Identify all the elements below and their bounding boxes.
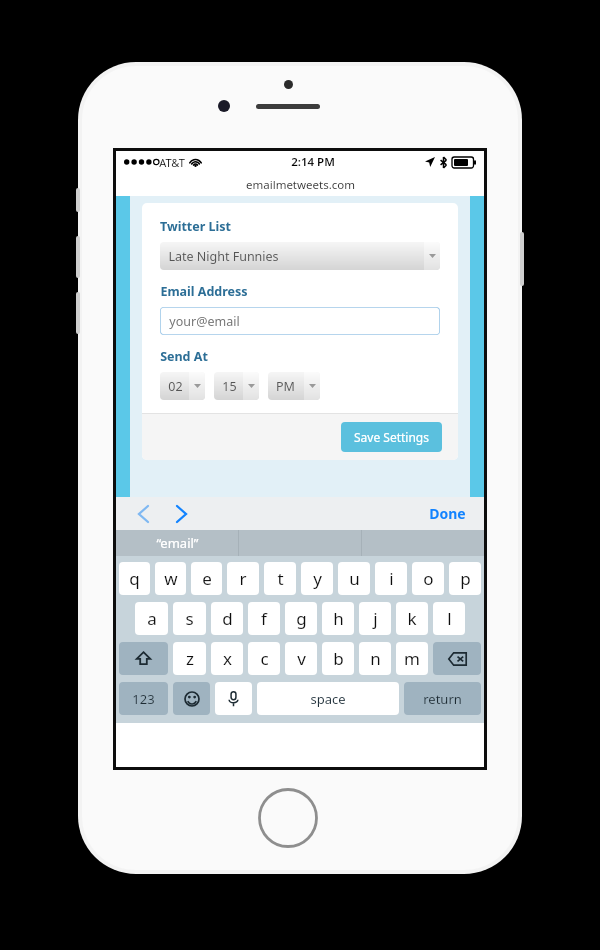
staticText: m (404, 647, 420, 670)
staticText: w (164, 567, 178, 590)
button[interactable]: o (412, 562, 444, 595)
button[interactable]: z (173, 642, 206, 675)
staticText: s (185, 607, 194, 630)
button[interactable]: r (227, 562, 259, 595)
staticText: q (129, 567, 140, 590)
staticText: 02 (168, 378, 183, 395)
button[interactable]: u (338, 562, 370, 595)
staticText: Done (429, 504, 466, 523)
button[interactable]: y (301, 562, 333, 595)
staticText: f (261, 607, 267, 630)
button[interactable]: n (359, 642, 391, 675)
staticText: i (389, 567, 394, 590)
button[interactable]: w (155, 562, 186, 595)
staticText: p (460, 567, 471, 590)
button[interactable]: Dictation (215, 682, 252, 715)
button[interactable]: Emoji (173, 682, 210, 715)
button[interactable]: f (248, 602, 280, 635)
staticText: Send At (160, 348, 208, 365)
staticText: “email” (156, 534, 199, 552)
button[interactable]: h (322, 602, 354, 635)
staticText: y (313, 567, 322, 590)
button[interactable]: i (375, 562, 407, 595)
staticText: Email Address (160, 283, 248, 300)
button[interactable]: “email” (116, 530, 238, 556)
button[interactable]: Save Settings (341, 422, 442, 452)
staticText: a (147, 607, 157, 630)
staticText: 15 (222, 378, 237, 395)
button[interactable]: s (173, 602, 206, 635)
button[interactable]: k (396, 602, 428, 635)
staticText: Twitter List (160, 218, 231, 235)
staticText: v (297, 647, 306, 670)
staticText: u (349, 567, 360, 590)
staticText: z (186, 647, 194, 670)
staticText: PM (276, 378, 295, 395)
staticText: d (222, 607, 233, 630)
button[interactable]: j (359, 602, 391, 635)
staticText: your@email (169, 313, 240, 330)
staticText: emailmetweets.com (246, 177, 355, 193)
button[interactable]: return (404, 682, 481, 715)
staticText: j (373, 607, 378, 630)
button[interactable]: 123 (119, 682, 168, 715)
staticText: Save Settings (354, 429, 429, 445)
button[interactable]: m (396, 642, 428, 675)
button[interactable]: v (285, 642, 317, 675)
staticText: Late Night Funnies (168, 248, 279, 265)
button[interactable]: Done (425, 499, 470, 528)
staticText: AT&T (159, 155, 185, 170)
staticText: return (423, 690, 462, 708)
button[interactable]: d (211, 602, 243, 635)
staticText: 2:14 PM (291, 154, 335, 170)
staticText: l (447, 607, 452, 630)
button[interactable]: x (211, 642, 243, 675)
staticText: space (310, 690, 346, 708)
staticText: 123 (132, 690, 155, 708)
staticText: n (370, 647, 381, 670)
button[interactable]: q (119, 562, 150, 595)
button[interactable]: Home (258, 788, 318, 848)
button[interactable]: g (285, 602, 317, 635)
staticText: c (260, 647, 269, 670)
staticText: o (423, 567, 434, 590)
button[interactable]: t (264, 562, 296, 595)
button[interactable]: p (449, 562, 481, 595)
button[interactable]: b (322, 642, 354, 675)
button[interactable]: Late Night Funnies (160, 242, 440, 270)
staticText: r (239, 567, 247, 590)
button[interactable]: a (135, 602, 168, 635)
button[interactable]: PM (268, 372, 320, 400)
staticText: b (333, 647, 344, 670)
staticText: h (333, 607, 344, 630)
button[interactable]: 02 (160, 372, 205, 400)
button[interactable]: Backspace (433, 642, 481, 675)
staticText: x (223, 647, 232, 670)
button[interactable]: Next field (168, 499, 194, 529)
button[interactable]: e (191, 562, 222, 595)
button[interactable]: Previous field (130, 499, 156, 529)
staticText: k (407, 607, 417, 630)
staticText: t (277, 567, 284, 590)
staticText: g (296, 607, 307, 630)
button[interactable]: your@email (160, 307, 440, 335)
button[interactable]: 15 (214, 372, 259, 400)
staticText: e (202, 567, 212, 590)
button[interactable]: l (433, 602, 465, 635)
button[interactable]: space (257, 682, 399, 715)
button[interactable]: Shift (119, 642, 168, 675)
button[interactable]: c (248, 642, 280, 675)
